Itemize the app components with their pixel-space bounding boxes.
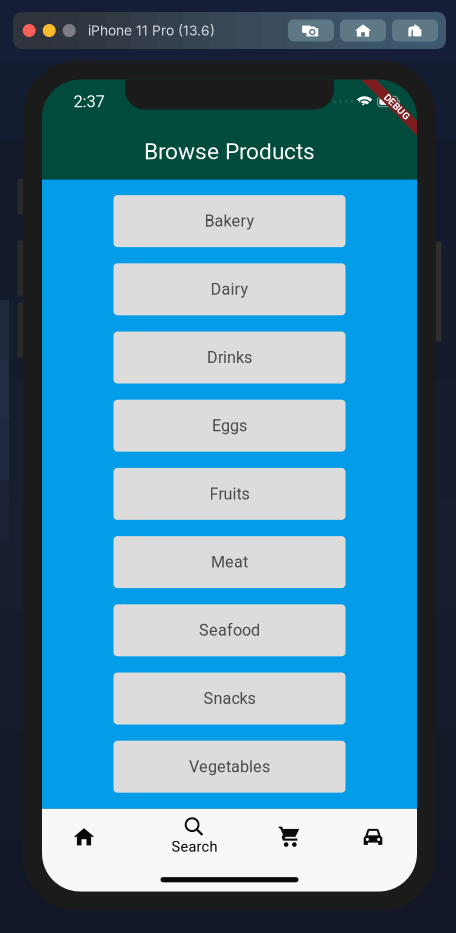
staticText: 2:37 [73, 92, 104, 111]
button[interactable]: Home [340, 19, 386, 41]
staticText: Search [171, 838, 217, 855]
staticText: DEBUG [381, 101, 413, 113]
staticText: Vegetables [189, 757, 270, 776]
button[interactable]: Vegetables [113, 741, 345, 793]
button[interactable]: Search [163, 811, 225, 863]
staticText: Eggs [212, 416, 247, 435]
staticText: Bakery [204, 212, 254, 230]
staticText: Meat [211, 553, 248, 571]
button[interactable]: Delivery [352, 811, 393, 863]
button[interactable]: Cart [268, 811, 309, 863]
button[interactable]: Bakery [113, 195, 345, 247]
button[interactable]: Fruits [113, 468, 345, 520]
staticText: Snacks [203, 689, 255, 708]
button[interactable]: Eggs [113, 400, 345, 452]
staticText: Drinks [207, 348, 252, 367]
button[interactable]: Screenshot [288, 19, 334, 41]
staticText: iPhone 11 Pro (13.6) [88, 22, 215, 39]
staticText: Fruits [209, 484, 249, 503]
button[interactable]: Home [63, 811, 104, 863]
button[interactable]: Meat [113, 536, 345, 588]
button[interactable]: Dairy [113, 263, 345, 315]
staticText: Browse Products [144, 138, 315, 165]
button[interactable]: Share [392, 19, 438, 41]
button[interactable]: Seafood [113, 604, 345, 656]
staticText: Dairy [210, 280, 248, 299]
button[interactable]: Snacks [113, 672, 345, 724]
staticText: Seafood [199, 621, 260, 640]
button[interactable]: Drinks [113, 331, 345, 383]
